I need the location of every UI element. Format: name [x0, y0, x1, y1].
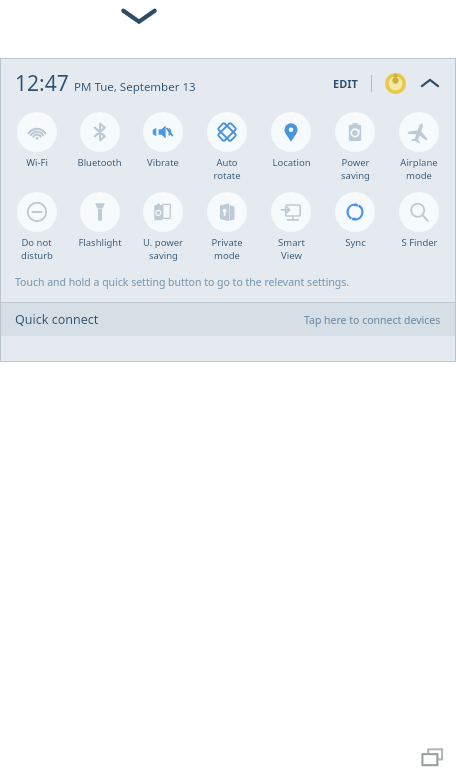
staticText: Power — [341, 156, 370, 169]
staticText: 12:47 — [15, 69, 69, 98]
staticText: EDIT — [333, 76, 358, 91]
staticText: rotate — [213, 169, 241, 182]
staticText: saving — [341, 169, 370, 182]
staticText: Touch and hold a quick setting button to… — [15, 275, 350, 289]
staticText: Wi-Fi — [26, 156, 48, 169]
button[interactable]: Bluetooth — [68, 109, 131, 171]
staticText: Tap here to connect devices — [304, 313, 441, 327]
button[interactable]: EDIT — [327, 70, 364, 97]
staticText: Airplane — [400, 156, 438, 169]
button[interactable]: Collapse panel — [415, 68, 445, 98]
button[interactable]: Flashlight — [68, 189, 131, 251]
button[interactable]: Do not — [5, 189, 68, 264]
staticText: disturb — [21, 249, 53, 262]
button[interactable]: Private — [195, 189, 259, 264]
staticText: saving — [149, 249, 178, 262]
staticText: Vibrate — [147, 156, 179, 169]
button[interactable]: Quick connect — [1, 303, 455, 336]
button[interactable]: Vibrate — [131, 109, 195, 171]
staticText: Quick connect — [15, 311, 99, 328]
button[interactable]: Location — [259, 109, 323, 171]
button[interactable]: Multi window — [418, 742, 448, 772]
staticText: Do not — [21, 236, 52, 249]
staticText: Smart — [278, 236, 305, 249]
button[interactable]: Auto — [195, 109, 259, 184]
button[interactable]: S Finder — [387, 189, 451, 251]
staticText: U. power — [143, 236, 183, 249]
button[interactable]: Sync — [323, 189, 387, 251]
staticText: Sync — [345, 236, 366, 249]
button[interactable]: Smart — [259, 189, 323, 264]
staticText: Flashlight — [78, 236, 122, 249]
button[interactable]: Wi-Fi — [5, 109, 68, 171]
staticText: Auto — [216, 156, 238, 169]
staticText: Location — [272, 156, 311, 169]
staticText: View — [281, 249, 302, 262]
button[interactable]: User profile — [381, 69, 409, 97]
staticText: Private — [211, 236, 243, 249]
staticText: PM Tue, September 13 — [74, 79, 196, 95]
button[interactable]: Airplane — [387, 109, 451, 184]
button[interactable]: U. power — [131, 189, 195, 264]
staticText: mode — [406, 169, 432, 182]
button[interactable]: Power — [323, 109, 387, 184]
staticText: S Finder — [401, 236, 438, 249]
staticText: Bluetooth — [77, 156, 122, 169]
staticText: mode — [214, 249, 240, 262]
button[interactable]: Collapse — [110, 0, 168, 32]
